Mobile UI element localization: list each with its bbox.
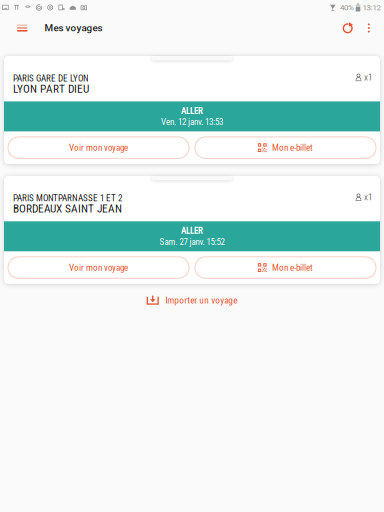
staticText: 40% xyxy=(340,3,354,12)
staticText: Ven. 12 janv. 13:53 xyxy=(161,117,223,127)
staticText: BORDEAUX SAINT JEAN xyxy=(13,202,122,215)
button[interactable]: Mon e-billet xyxy=(195,257,376,278)
staticText: Importer un voyage xyxy=(165,295,237,306)
staticText: PARIS MONTPARNASSE 1 ET 2 xyxy=(13,193,122,203)
staticText: ALLER xyxy=(181,105,203,116)
staticText: 13:12 xyxy=(362,3,380,12)
staticText: Mon e-billet xyxy=(272,262,313,273)
staticText: Sam. 27 janv. 15:52 xyxy=(159,237,224,247)
staticText: Mon e-billet xyxy=(272,142,313,153)
button[interactable]: Menu xyxy=(11,14,34,42)
staticText: Voir mon voyage xyxy=(69,142,128,153)
button[interactable]: Voir mon voyage xyxy=(8,257,189,278)
staticText: Voir mon voyage xyxy=(69,262,128,273)
button[interactable]: Mon e-billet xyxy=(195,137,376,158)
staticText: PARIS GARE DE LYON xyxy=(13,73,89,84)
button[interactable]: Voir mon voyage xyxy=(8,137,189,158)
button[interactable]: Actualiser xyxy=(335,13,361,43)
staticText: x1 xyxy=(364,192,372,202)
staticText: x1 xyxy=(364,72,372,83)
button[interactable]: Importer un voyage xyxy=(137,288,247,313)
staticText: ALLER xyxy=(181,225,203,236)
button[interactable]: Plus d'options xyxy=(361,14,377,42)
staticText: LYON PART DIEU xyxy=(13,82,89,95)
staticText: Mes voyages xyxy=(45,22,103,34)
